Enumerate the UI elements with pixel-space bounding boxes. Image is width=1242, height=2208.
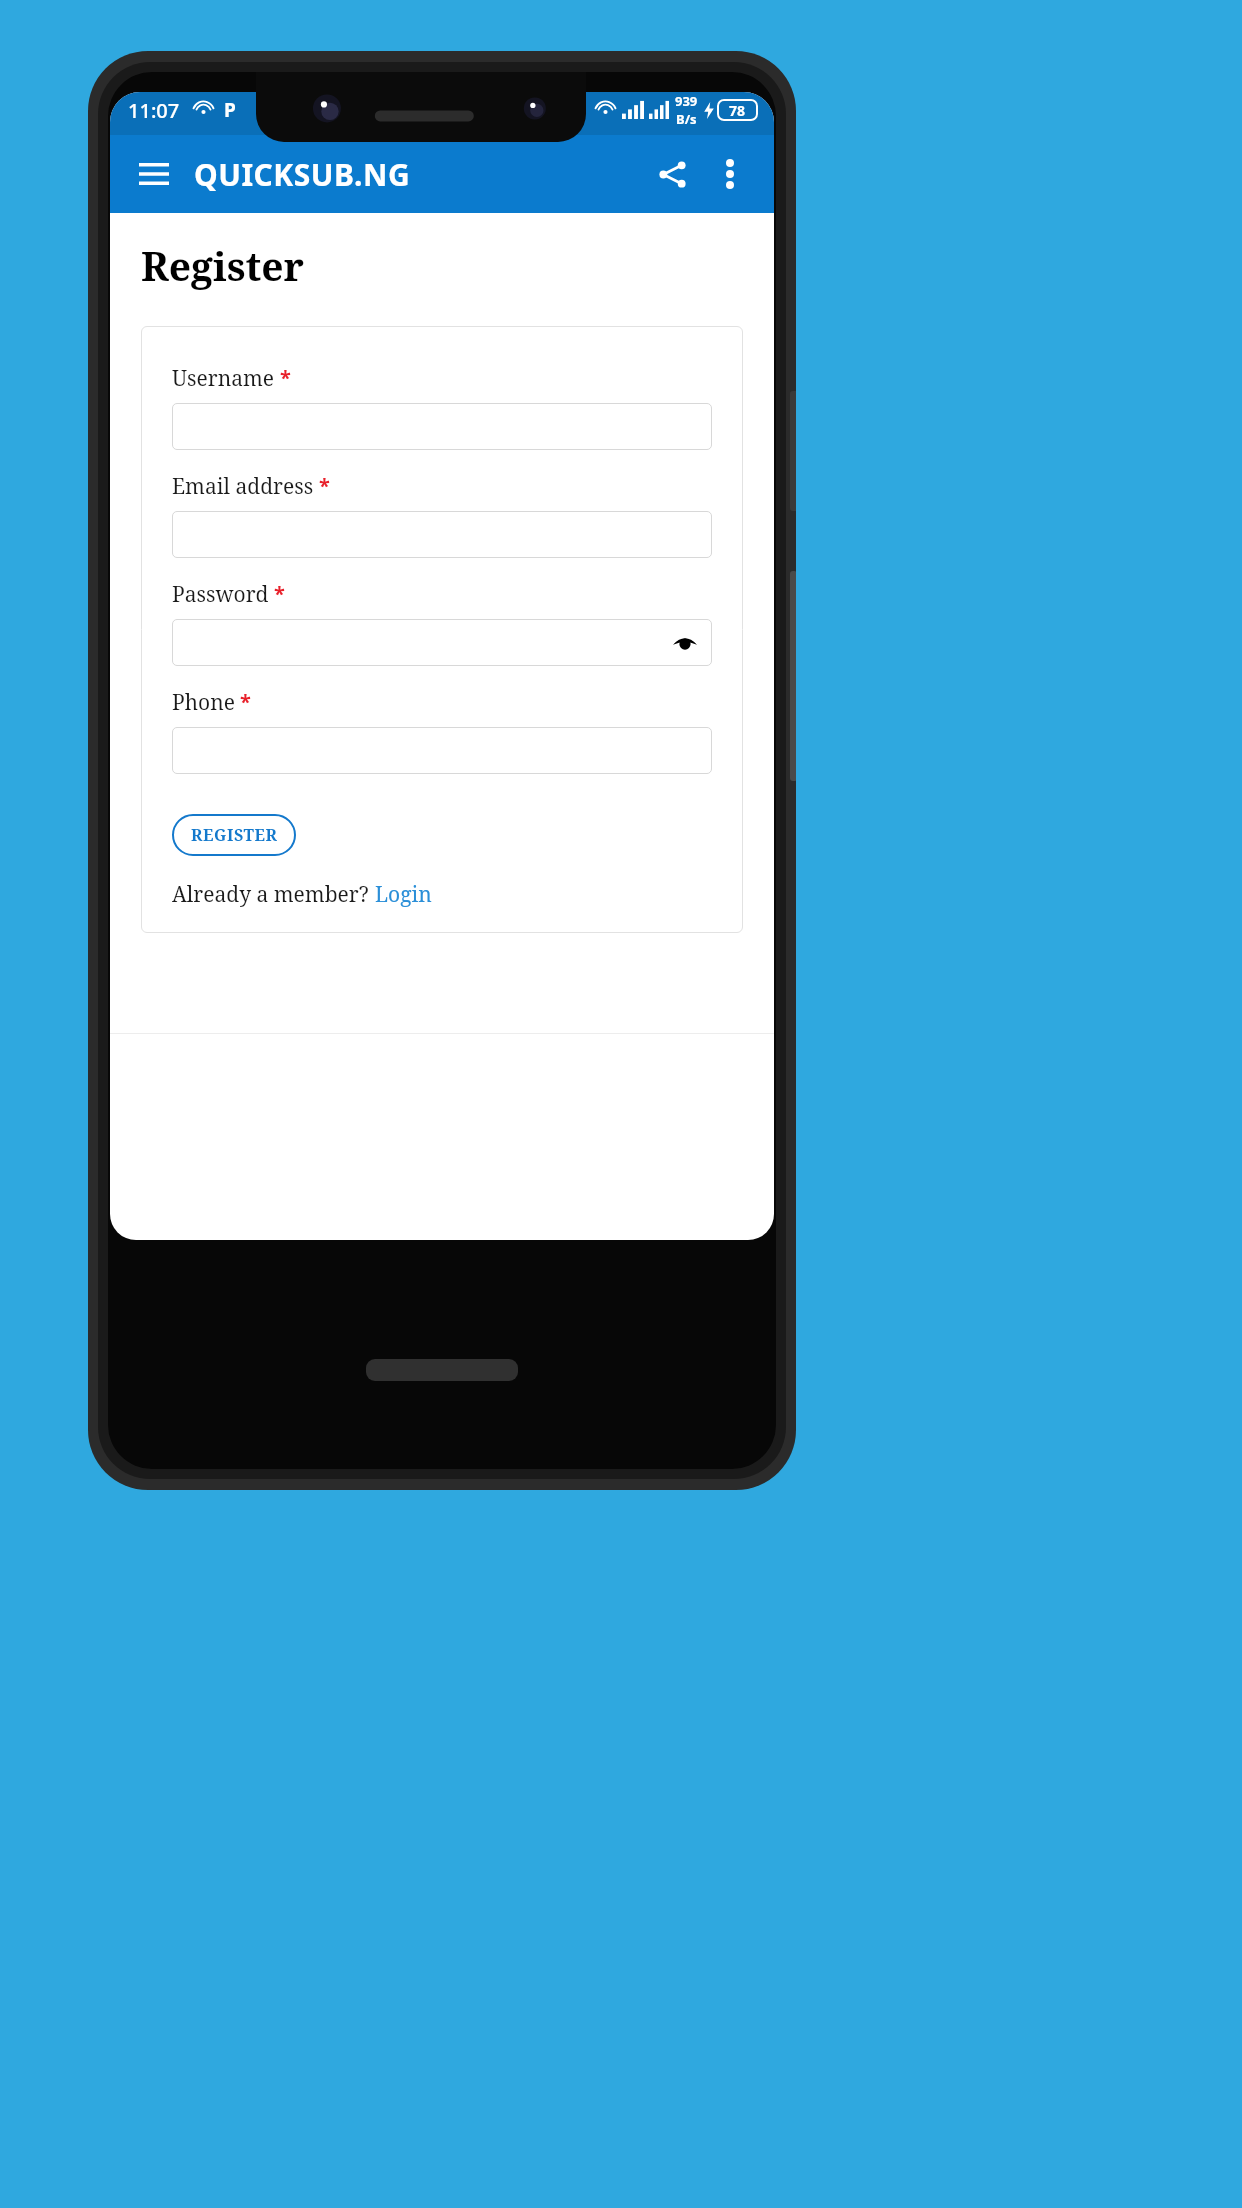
button[interactable]: Share: [650, 152, 694, 196]
staticText: Register: [141, 239, 304, 292]
staticText: Phone: [172, 688, 235, 717]
staticText: 11:07: [128, 97, 180, 124]
button[interactable]: Open navigation menu: [132, 152, 176, 196]
staticText: Password: [172, 580, 269, 609]
staticText: REGISTER: [191, 824, 278, 846]
button[interactable]: More options: [708, 152, 752, 196]
staticText: 78: [729, 101, 746, 120]
staticText: QUICKSUB.NG: [194, 154, 411, 195]
staticText: Login: [375, 880, 432, 909]
staticText: Email address: [172, 472, 314, 501]
staticText: 939: [675, 92, 698, 110]
other: Show password: [672, 630, 698, 656]
staticText: B/s: [676, 110, 697, 128]
button[interactable]: [172, 511, 712, 558]
staticText: *: [280, 364, 291, 391]
button[interactable]: [172, 727, 712, 774]
staticText: Already a member?: [172, 880, 375, 909]
staticText: P: [224, 97, 236, 123]
button[interactable]: REGISTER: [172, 814, 296, 856]
button[interactable]: Login: [375, 880, 432, 909]
staticText: *: [274, 580, 285, 607]
staticText: Username: [172, 364, 275, 393]
button[interactable]: [172, 403, 712, 450]
staticText: *: [319, 472, 330, 499]
button[interactable]: Show password: [172, 619, 712, 666]
staticText: *: [240, 688, 251, 715]
